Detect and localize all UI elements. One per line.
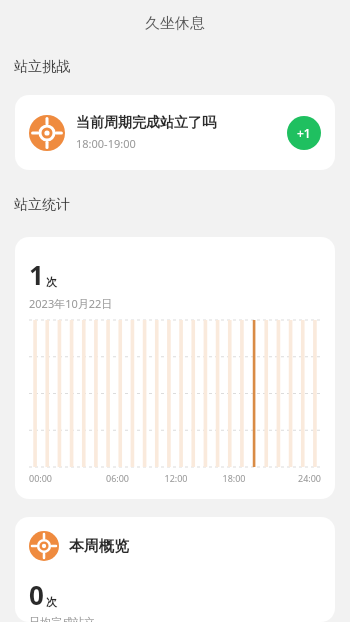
staticText: 24:00: [263, 472, 321, 484]
staticText: 次: [46, 595, 57, 609]
staticText: 久坐休息: [145, 14, 205, 33]
button[interactable]: 1: [15, 237, 335, 499]
staticText: 00:00: [29, 472, 88, 484]
staticText: 18:00: [205, 472, 263, 484]
staticText: 日均完成站立: [29, 615, 95, 622]
button[interactable]: 当前周期完成站立了吗: [15, 95, 335, 170]
staticText: 18:00-19:00: [76, 136, 136, 151]
staticText: 12:00: [147, 472, 205, 484]
staticText: 当前周期完成站立了吗: [76, 114, 216, 132]
staticText: 次: [46, 275, 57, 289]
staticText: 站立统计: [14, 196, 70, 214]
staticText: 0: [29, 577, 44, 612]
button[interactable]: 本周概览: [15, 517, 335, 622]
staticText: 2023年10月22日: [29, 296, 113, 311]
staticText: 本周概览: [69, 537, 129, 556]
staticText: 06:00: [88, 472, 147, 484]
staticText: +1: [297, 125, 311, 141]
button[interactable]: 增加一次: [287, 116, 321, 150]
staticText: 站立挑战: [14, 58, 70, 76]
staticText: 1: [29, 257, 44, 292]
